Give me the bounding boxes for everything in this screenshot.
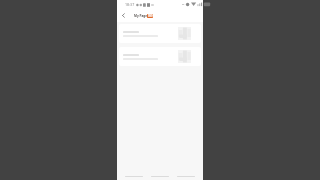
button[interactable]: Back: [119, 11, 128, 20]
staticText: 18:37: [125, 2, 135, 7]
staticText: 999: [148, 14, 153, 18]
button[interactable]: [119, 24, 201, 43]
staticText: My Page: [134, 14, 148, 18]
button[interactable]: [119, 47, 201, 66]
